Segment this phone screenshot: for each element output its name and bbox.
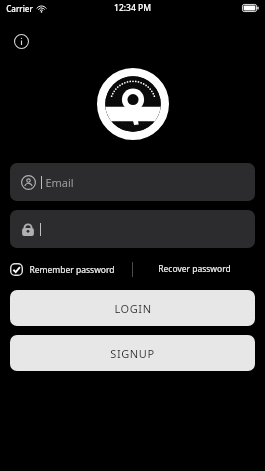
staticText: LOGIN (114, 301, 152, 316)
button[interactable]: SIGNUP (10, 335, 255, 371)
button[interactable]: Recover password (133, 263, 255, 275)
staticText: SIGNUP (110, 346, 155, 361)
staticText: Carrier (6, 3, 33, 14)
button[interactable]: Information (8, 28, 34, 54)
staticText: Remember password (29, 264, 115, 276)
button[interactable]: LOGIN (10, 290, 255, 326)
button[interactable]: Email field (10, 163, 255, 201)
button[interactable]: Password field (10, 210, 255, 248)
staticText: 12:34 PM (114, 2, 151, 14)
staticText: Email (45, 175, 74, 190)
button[interactable]: Remember password (10, 263, 132, 276)
staticText: Recover password (158, 263, 231, 275)
